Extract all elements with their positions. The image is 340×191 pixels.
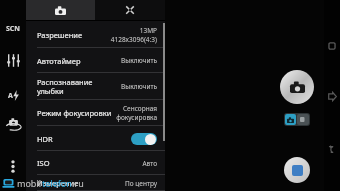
staticText: По центру <box>125 179 157 188</box>
button[interactable]: Camera settings <box>26 0 95 20</box>
button[interactable]: Photo video mode <box>284 113 310 126</box>
button[interactable]: Распознавание улыбки <box>26 73 165 100</box>
button[interactable]: Автотаймер <box>26 48 165 73</box>
staticText: ISO <box>37 158 50 168</box>
staticText: 13MP <box>139 26 157 35</box>
staticText: HDR <box>37 134 53 144</box>
staticText: Разрешение <box>37 30 83 40</box>
staticText: фокусировка <box>116 113 157 122</box>
button[interactable]: ISO <box>26 151 165 175</box>
staticText: Выключить <box>121 82 157 91</box>
button[interactable]: Back <box>324 141 340 157</box>
staticText: Сенсорная <box>122 104 157 113</box>
button[interactable]: Shutter <box>280 70 314 104</box>
staticText: Автотаймер <box>37 56 81 66</box>
button[interactable]: Flash auto <box>0 83 26 107</box>
staticText: telefon <box>42 177 72 189</box>
staticText: A <box>8 91 13 101</box>
staticText: 4128x3096(4:3) <box>110 35 157 44</box>
staticText: mobil <box>17 177 42 189</box>
button[interactable]: Измерение <box>26 175 165 191</box>
staticText: Авто <box>142 159 157 168</box>
staticText: Выключить <box>121 56 157 65</box>
staticText: SCN <box>6 24 21 34</box>
staticText: Распознавание улыбки <box>37 77 93 96</box>
button[interactable]: Разрешение <box>26 21 165 48</box>
button[interactable]: HDR <box>26 126 165 151</box>
button[interactable]: Settings <box>0 48 26 72</box>
button[interactable]: Home <box>324 88 340 104</box>
staticText: Режим фокусировки <box>37 108 112 118</box>
button[interactable]: More options <box>0 155 26 177</box>
staticText: .ru <box>72 177 84 189</box>
button[interactable]: Режим фокусировки <box>26 100 165 126</box>
button[interactable]: Recents <box>324 38 340 54</box>
button[interactable]: Switch camera <box>0 112 26 136</box>
button[interactable]: General settings <box>95 0 165 20</box>
button[interactable]: Gallery <box>284 157 310 183</box>
button[interactable]: SCN <box>0 18 26 40</box>
staticText: Измерение <box>37 178 79 188</box>
